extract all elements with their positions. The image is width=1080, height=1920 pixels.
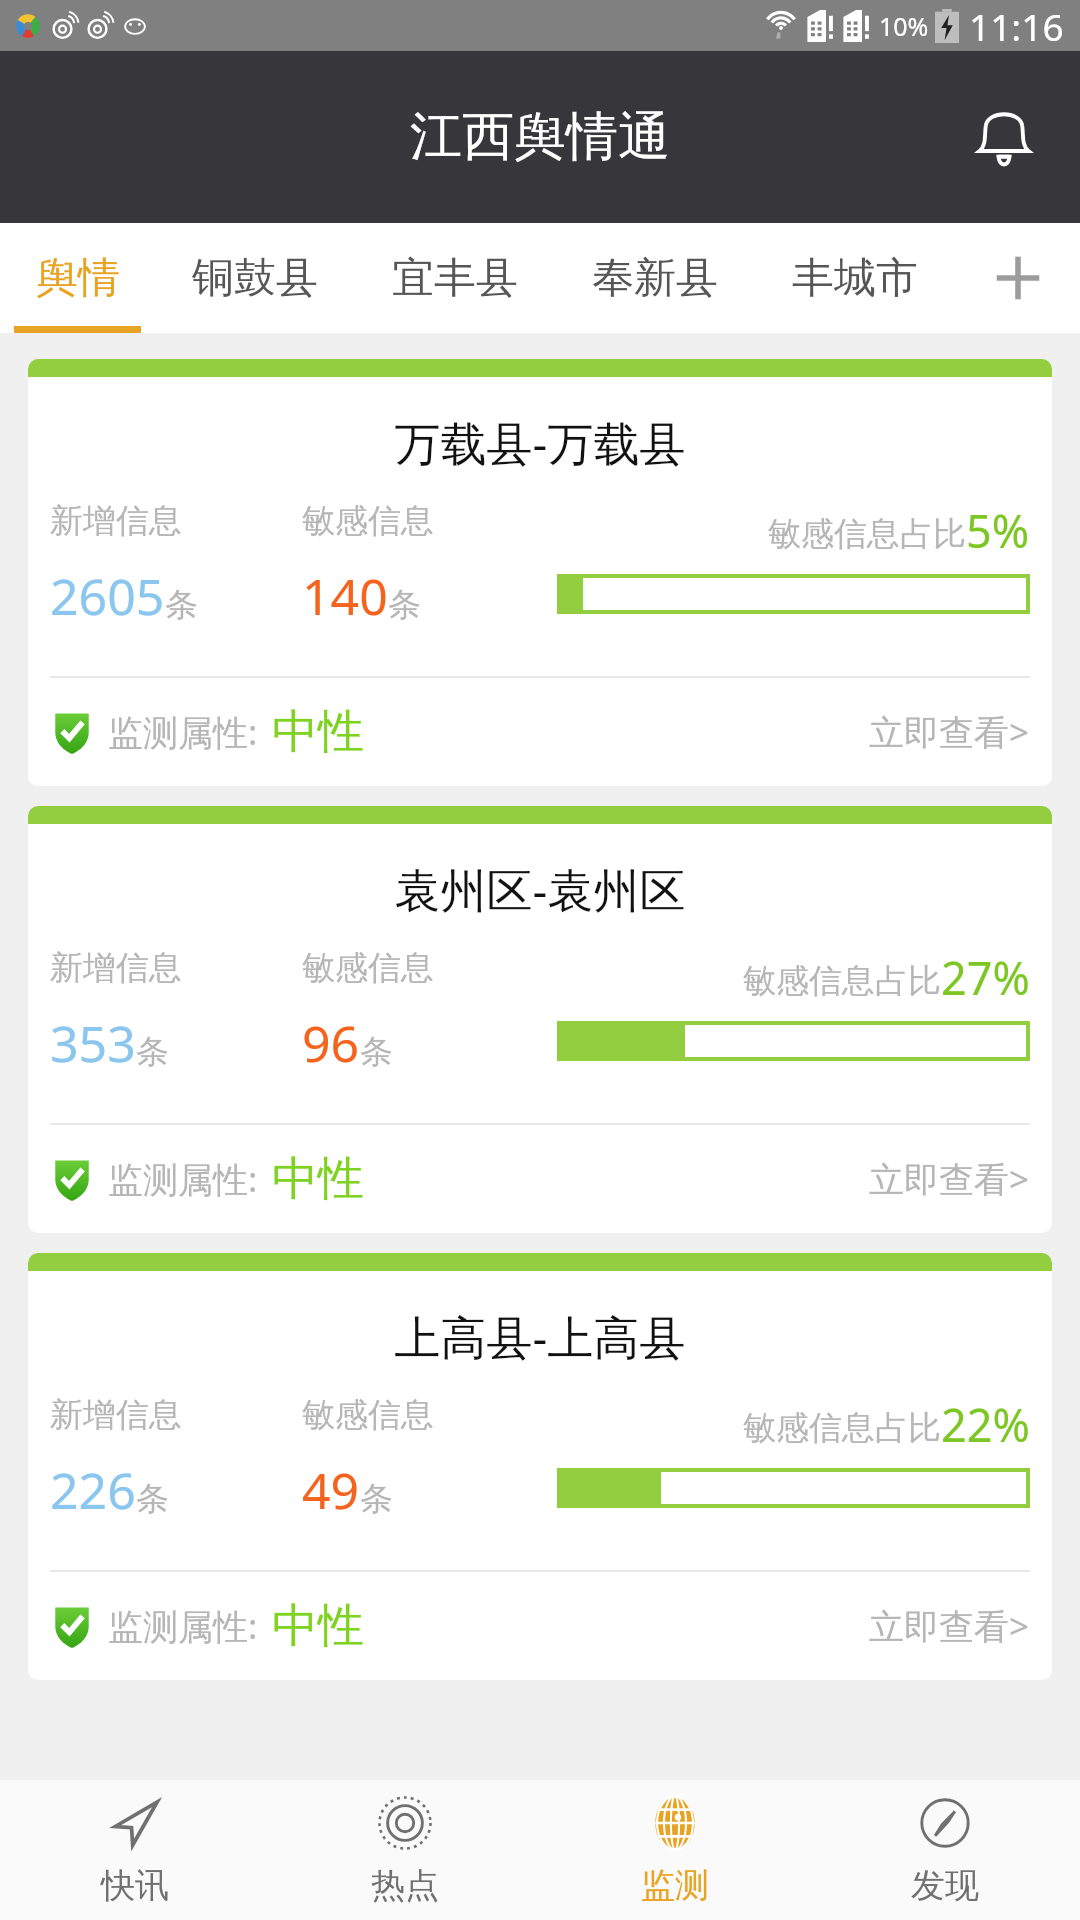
staticText: 27% — [941, 947, 1030, 1008]
button[interactable]: 丰城市 — [755, 223, 955, 333]
staticText: 监测属性: — [108, 708, 258, 756]
staticText: 96 — [302, 1009, 360, 1077]
button[interactable]: 万载县-万载县 — [28, 359, 1052, 786]
staticText: 热点 — [371, 1864, 439, 1907]
staticText: 奉新县 — [592, 252, 718, 305]
staticText: 226 — [50, 1456, 136, 1524]
staticText: 11:16 — [969, 1, 1064, 51]
staticText: 发现 — [911, 1864, 979, 1907]
button[interactable]: Add channel — [955, 223, 1080, 333]
staticText: 敏感信息 — [302, 500, 434, 542]
staticText: 万载县-万载县 — [28, 411, 1052, 474]
staticText: 5% — [966, 500, 1030, 561]
button[interactable]: 热点 — [270, 1780, 540, 1920]
staticText: 新增信息 — [50, 947, 182, 989]
staticText: 条 — [360, 1031, 393, 1073]
staticText: 敏感信息占比 — [743, 960, 941, 1002]
staticText: 22% — [941, 1394, 1030, 1455]
staticText: 条 — [136, 1031, 169, 1073]
staticText: 江西舆情通 — [410, 104, 670, 170]
staticText: 敏感信息占比 — [743, 1407, 941, 1449]
button[interactable]: 监测 — [540, 1780, 810, 1920]
staticText: 宜丰县 — [392, 252, 518, 305]
staticText: 中性 — [272, 1150, 364, 1208]
staticText: 监测 — [641, 1864, 709, 1907]
staticText: 立即查看> — [869, 1155, 1030, 1203]
staticText: 中性 — [272, 1597, 364, 1655]
staticText: 2605 — [50, 562, 165, 630]
staticText: 上高县-上高县 — [28, 1305, 1052, 1368]
staticText: 10% — [879, 9, 929, 43]
staticText: 敏感信息占比 — [768, 513, 966, 555]
staticText: 49 — [302, 1456, 360, 1524]
staticText: 监测属性: — [108, 1602, 258, 1650]
staticText: 监测属性: — [108, 1155, 258, 1203]
staticText: 袁州区-袁州区 — [28, 858, 1052, 921]
staticText: 铜鼓县 — [192, 252, 318, 305]
button[interactable]: 袁州区-袁州区 — [28, 806, 1052, 1233]
staticText: 条 — [360, 1478, 393, 1520]
staticText: 353 — [50, 1009, 136, 1077]
button[interactable]: 快讯 — [0, 1780, 270, 1920]
staticText: 新增信息 — [50, 500, 182, 542]
button[interactable]: 上高县-上高县 — [28, 1253, 1052, 1680]
staticText: 新增信息 — [50, 1394, 182, 1436]
button[interactable]: Notifications — [956, 89, 1052, 185]
button[interactable]: 舆情 — [0, 223, 155, 333]
button[interactable]: 宜丰县 — [355, 223, 555, 333]
staticText: 条 — [136, 1478, 169, 1520]
staticText: 立即查看> — [869, 1602, 1030, 1650]
staticText: 立即查看> — [869, 708, 1030, 756]
staticText: 140 — [302, 562, 388, 630]
staticText: 快讯 — [101, 1864, 169, 1907]
staticText: 舆情 — [36, 252, 120, 305]
button[interactable]: 铜鼓县 — [155, 223, 355, 333]
staticText: 中性 — [272, 703, 364, 761]
button[interactable]: 发现 — [810, 1780, 1080, 1920]
staticText: 敏感信息 — [302, 947, 434, 989]
staticText: 丰城市 — [792, 252, 918, 305]
staticText: 条 — [388, 584, 421, 626]
staticText: 条 — [165, 584, 198, 626]
staticText: 敏感信息 — [302, 1394, 434, 1436]
button[interactable]: 奉新县 — [555, 223, 755, 333]
